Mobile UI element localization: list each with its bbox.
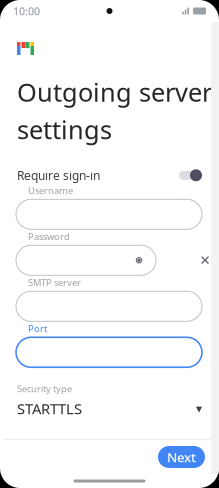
button[interactable]: SMTP server [4, 291, 215, 321]
staticText: Security type [17, 382, 72, 395]
staticText: Username [28, 184, 73, 197]
button[interactable]: Clear password [195, 245, 215, 275]
staticText: ▾ [196, 402, 202, 415]
button[interactable]: Next [158, 446, 205, 468]
staticText: Outgoing server settings [17, 75, 212, 146]
button[interactable]: Port [4, 337, 215, 367]
staticText: ✕ [199, 253, 210, 268]
button[interactable]: Password [4, 245, 195, 275]
staticText: 10:00 [13, 4, 40, 18]
staticText: STARTTLS [17, 399, 82, 418]
button[interactable]: Security type [4, 381, 215, 419]
button[interactable]: Require sign-in [4, 162, 215, 188]
button[interactable]: Username [4, 199, 215, 229]
staticText: SMTP server [28, 276, 81, 289]
staticText: Next [167, 448, 196, 466]
staticText: Password [28, 230, 70, 243]
staticText: Require sign-in [17, 167, 100, 183]
staticText: Port [28, 322, 47, 335]
